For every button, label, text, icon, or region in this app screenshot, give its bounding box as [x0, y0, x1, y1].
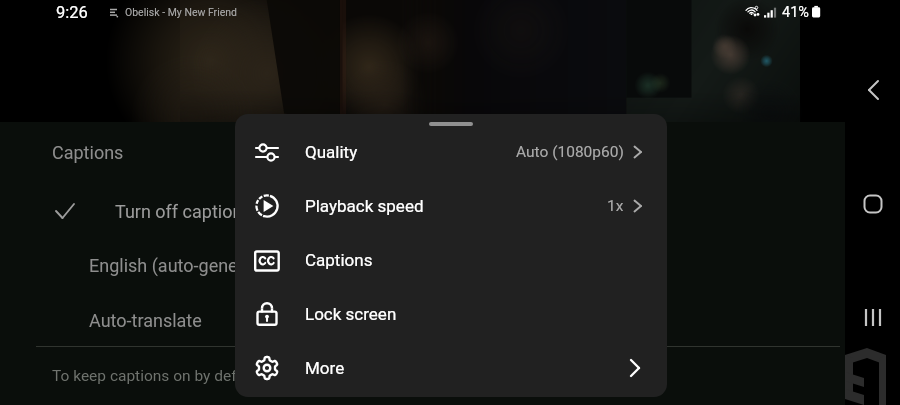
button[interactable]: More — [235, 341, 667, 395]
staticText: To keep captions on by default, turn on … — [52, 367, 409, 385]
button[interactable]: Captions — [52, 142, 124, 163]
button[interactable]: Auto-translate — [89, 310, 202, 331]
staticText: Playback speed — [305, 196, 424, 216]
staticText: 1x — [607, 197, 624, 215]
staticText: Turn off captions — [115, 201, 252, 222]
staticText: Captions — [52, 142, 124, 163]
staticText: Auto (1080p60) — [516, 143, 624, 161]
button[interactable]: Playback speed — [235, 179, 667, 233]
staticText: 41% — [782, 4, 809, 21]
button[interactable]: English (auto-generated) — [89, 255, 286, 276]
button[interactable]: Turn off captions — [0, 196, 560, 226]
staticText: Captions — [305, 250, 373, 270]
button[interactable]: Recents — [855, 300, 891, 336]
staticText: Lock screen — [305, 304, 397, 324]
button[interactable]: Quality — [235, 125, 667, 179]
button[interactable]: Back — [855, 72, 891, 108]
button[interactable]: Captions — [235, 233, 667, 287]
button[interactable]: Home — [855, 186, 891, 222]
staticText: Quality — [305, 142, 358, 162]
staticText: English (auto-generated) — [89, 255, 286, 276]
staticText: Obelisk - My New Friend — [125, 6, 238, 18]
staticText: 9:26 — [56, 3, 88, 22]
button[interactable]: Lock screen — [235, 287, 667, 341]
staticText: More — [305, 358, 345, 378]
staticText: Auto-translate — [89, 310, 202, 331]
